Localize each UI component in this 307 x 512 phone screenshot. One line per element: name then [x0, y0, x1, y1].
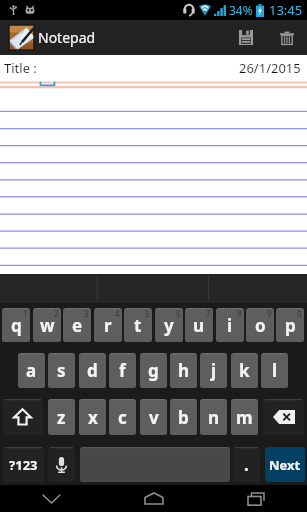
button[interactable]: p: [276, 308, 304, 342]
staticText: c: [118, 406, 127, 429]
button[interactable]: h: [170, 353, 197, 388]
staticText: w: [40, 314, 55, 337]
button[interactable]: Next: [265, 447, 305, 482]
staticText: t: [134, 314, 142, 337]
staticText: x: [88, 406, 98, 429]
button[interactable]: Space: [80, 447, 230, 482]
staticText: f: [119, 359, 126, 382]
staticText: 4: [115, 308, 120, 319]
button[interactable]: a: [18, 353, 45, 388]
staticText: q: [11, 314, 22, 337]
button[interactable]: v: [140, 399, 167, 435]
button[interactable]: j: [200, 353, 227, 388]
staticText: u: [193, 314, 205, 337]
staticText: ?123: [9, 456, 38, 474]
button[interactable]: s: [48, 353, 75, 388]
button[interactable]: f: [109, 353, 136, 388]
staticText: y: [164, 314, 174, 337]
staticText: m: [236, 406, 253, 429]
button[interactable]: Recent apps: [205, 485, 307, 512]
button[interactable]: o: [246, 308, 274, 342]
staticText: Title :: [4, 59, 37, 77]
button[interactable]: g: [140, 353, 167, 388]
staticText: Next: [269, 456, 301, 474]
button[interactable]: e: [63, 308, 91, 342]
button[interactable]: y: [155, 308, 183, 342]
staticText: 3: [84, 308, 89, 319]
button[interactable]: Save note: [225, 20, 266, 55]
staticText: 26/1/2015: [239, 59, 301, 77]
staticText: 0: [297, 308, 302, 319]
staticText: s: [57, 359, 66, 382]
button[interactable]: q: [2, 308, 30, 342]
staticText: h: [178, 359, 190, 382]
staticText: b: [178, 406, 189, 429]
staticText: i: [227, 314, 233, 337]
staticText: z: [57, 406, 66, 429]
button[interactable]: x: [79, 399, 106, 435]
button[interactable]: t: [124, 308, 152, 342]
staticText: o: [255, 314, 266, 337]
staticText: Notepad: [38, 28, 96, 47]
button[interactable]: w: [33, 308, 61, 342]
button[interactable]: z: [48, 399, 75, 435]
staticText: k: [239, 359, 250, 382]
staticText: 34%: [229, 2, 253, 18]
button[interactable]: d: [79, 353, 106, 388]
staticText: p: [285, 314, 296, 337]
button[interactable]: n: [200, 399, 227, 435]
staticText: v: [149, 406, 159, 429]
button[interactable]: c: [109, 399, 136, 435]
button[interactable]: k: [231, 353, 258, 388]
staticText: n: [208, 406, 220, 429]
button[interactable]: Delete note: [266, 20, 307, 55]
staticText: l: [272, 359, 278, 382]
button[interactable]: b: [170, 399, 197, 435]
staticText: 7: [206, 308, 211, 319]
staticText: .: [244, 453, 249, 476]
button[interactable]: Voice input: [48, 447, 75, 482]
button[interactable]: Shift: [2, 399, 43, 435]
staticText: 2: [54, 308, 59, 319]
button[interactable]: Hide keyboard: [0, 485, 103, 512]
button[interactable]: l: [261, 353, 288, 388]
button[interactable]: Delete: [263, 399, 304, 435]
button[interactable]: ?123: [3, 447, 44, 482]
staticText: 5: [145, 308, 150, 319]
staticText: 1: [23, 308, 28, 319]
staticText: a: [26, 359, 37, 382]
button[interactable]: u: [185, 308, 213, 342]
button[interactable]: i: [216, 308, 244, 342]
staticText: r: [104, 314, 112, 337]
button[interactable]: m: [231, 399, 258, 435]
staticText: 8: [237, 308, 242, 319]
staticText: 6: [176, 308, 181, 319]
staticText: e: [72, 314, 83, 337]
button[interactable]: .: [233, 447, 260, 482]
staticText: j: [211, 359, 217, 382]
staticText: d: [87, 359, 98, 382]
button[interactable]: Home: [103, 485, 205, 512]
staticText: 13:45: [269, 1, 303, 19]
button[interactable]: r: [94, 308, 122, 342]
staticText: g: [148, 359, 159, 382]
staticText: 9: [267, 308, 272, 319]
